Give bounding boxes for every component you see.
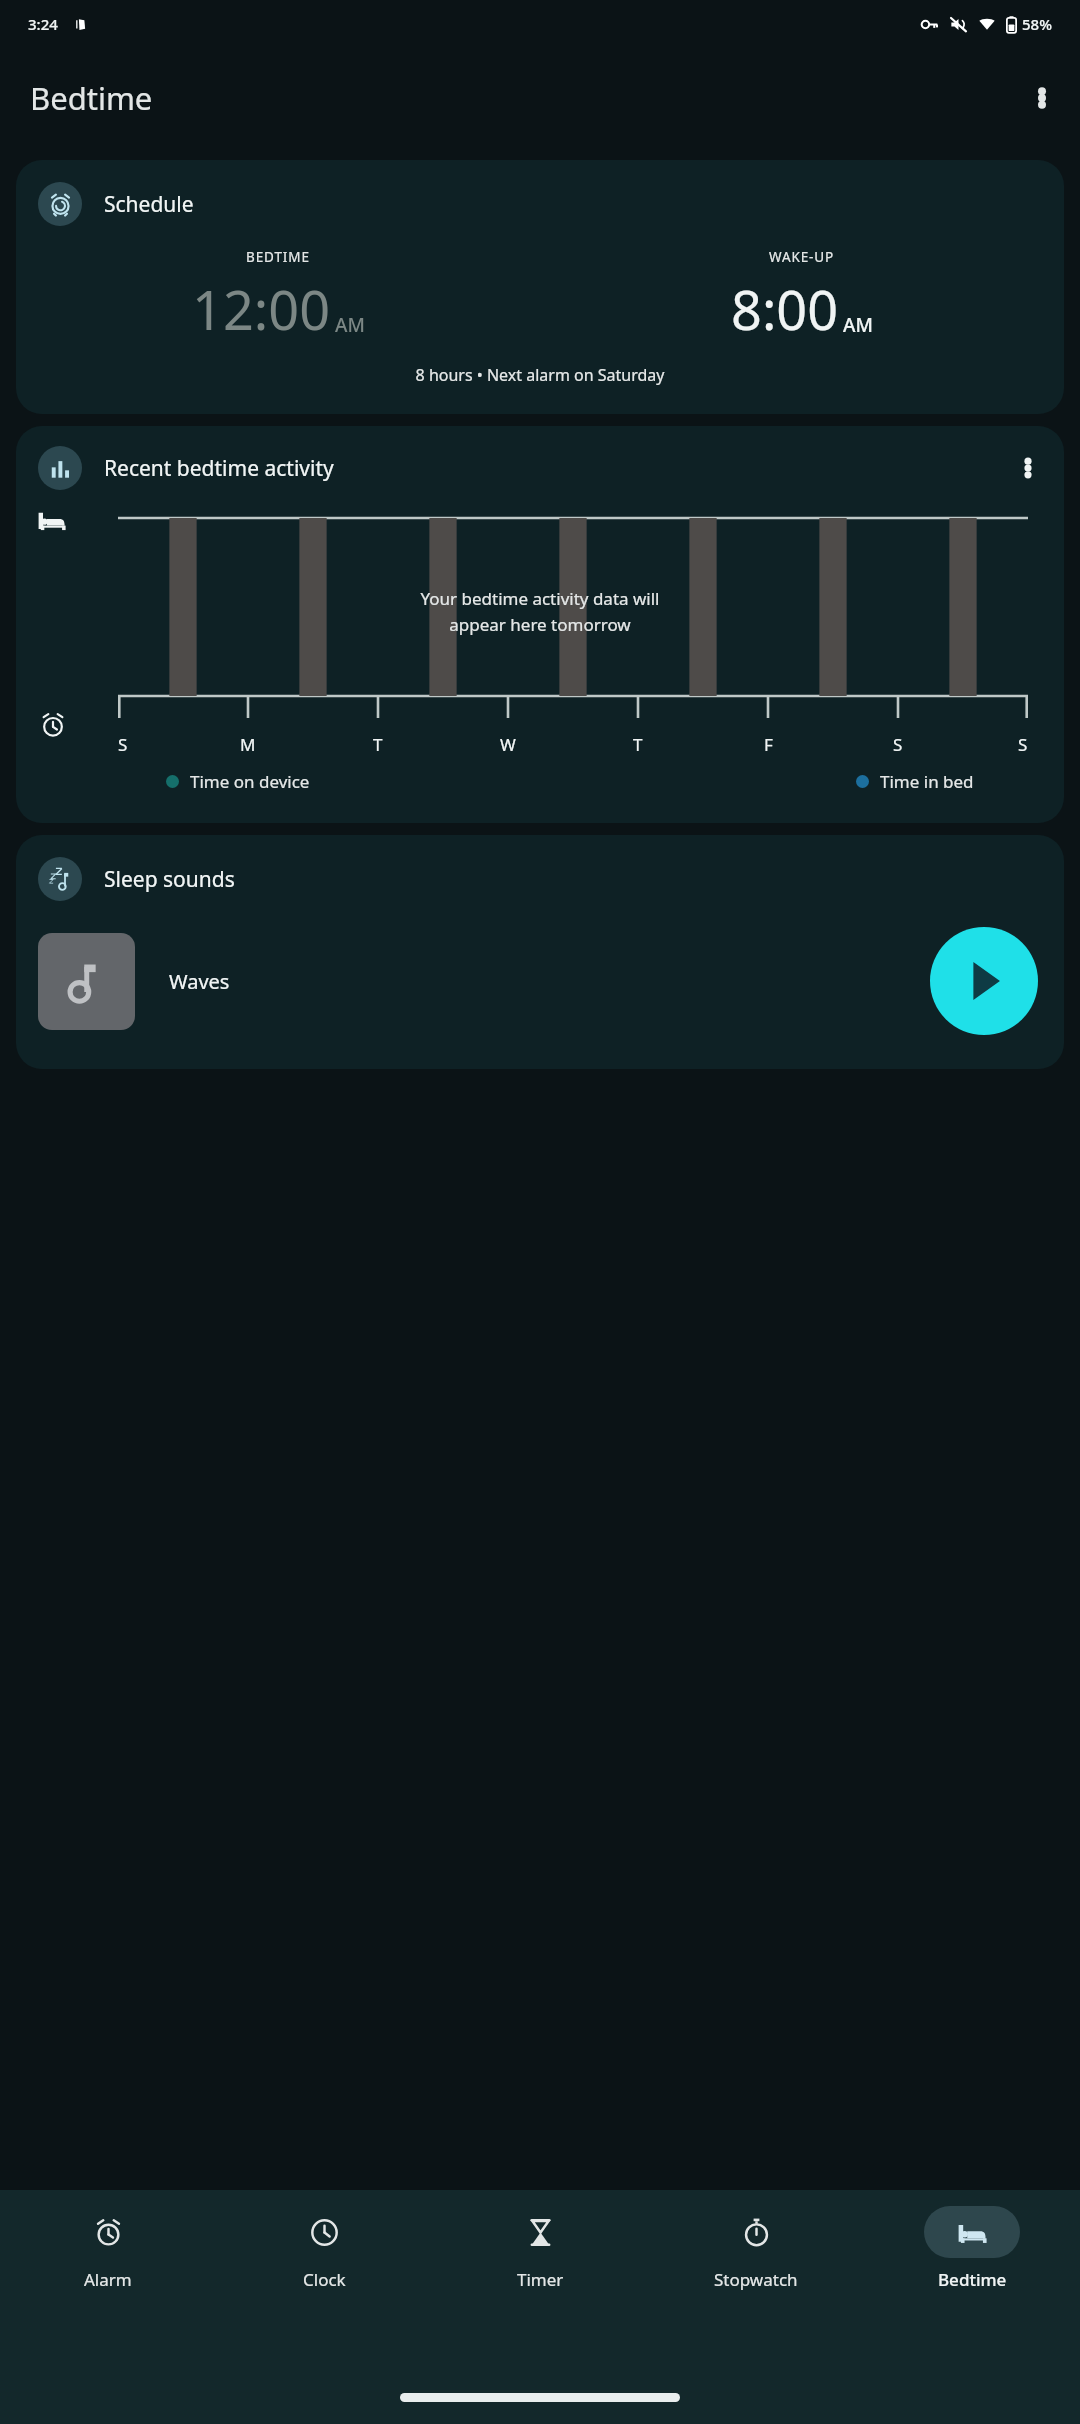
staticText: F xyxy=(764,733,773,756)
button[interactable] xyxy=(38,933,135,1030)
staticText: Waves xyxy=(169,968,230,995)
button[interactable]: More options xyxy=(1018,74,1066,122)
button[interactable]: WAKE-UP xyxy=(540,248,1064,346)
staticText: W xyxy=(500,733,516,756)
staticText: Timer xyxy=(517,2268,564,2291)
button[interactable]: Recent bedtime activity xyxy=(16,426,1064,823)
staticText: Bedtime xyxy=(30,77,153,119)
staticText: M xyxy=(240,733,256,756)
staticText: Bedtime xyxy=(938,2268,1007,2291)
staticText: S xyxy=(1018,733,1028,756)
staticText: Sleep sounds xyxy=(104,865,235,894)
button[interactable]: Time on device xyxy=(166,770,310,793)
staticText: Schedule xyxy=(104,190,194,219)
staticText: 8 hours • Next alarm on Saturday xyxy=(16,364,1064,386)
staticText: T xyxy=(633,733,643,756)
staticText: Time in bed xyxy=(880,770,974,793)
staticText: Recent bedtime activity xyxy=(104,454,334,483)
staticText: Time on device xyxy=(190,770,310,793)
button[interactable]: Play xyxy=(930,927,1038,1035)
staticText: S xyxy=(118,733,128,756)
staticText: 58% xyxy=(1022,14,1052,34)
staticText: S xyxy=(893,733,903,756)
button[interactable]: Activity options xyxy=(1006,446,1050,490)
button[interactable]: Alarm xyxy=(0,2190,216,2380)
button[interactable]: Time in bed xyxy=(856,770,974,793)
button[interactable]: Schedule xyxy=(16,160,1064,414)
staticText: Your bedtime activity data will appear h… xyxy=(420,587,660,636)
staticText: WAKE-UP xyxy=(769,248,835,266)
button[interactable]: Stopwatch xyxy=(648,2190,864,2380)
staticText: BEDTIME xyxy=(246,248,310,266)
staticText: T xyxy=(373,733,383,756)
staticText: 3:24 xyxy=(28,14,58,34)
staticText: Clock xyxy=(303,2268,346,2291)
staticText: AM xyxy=(843,312,873,338)
staticText: AM xyxy=(335,312,365,338)
button[interactable]: Sleep sounds xyxy=(16,835,1064,1069)
button[interactable]: Timer xyxy=(432,2190,648,2380)
button[interactable]: Clock xyxy=(216,2190,432,2380)
staticText: Stopwatch xyxy=(714,2268,798,2291)
staticText: 8:00 xyxy=(731,272,839,346)
staticText: Alarm xyxy=(84,2268,132,2291)
button[interactable]: Bedtime xyxy=(864,2190,1080,2380)
staticText: 12:00 xyxy=(192,272,331,346)
button[interactable]: BEDTIME xyxy=(16,248,540,346)
